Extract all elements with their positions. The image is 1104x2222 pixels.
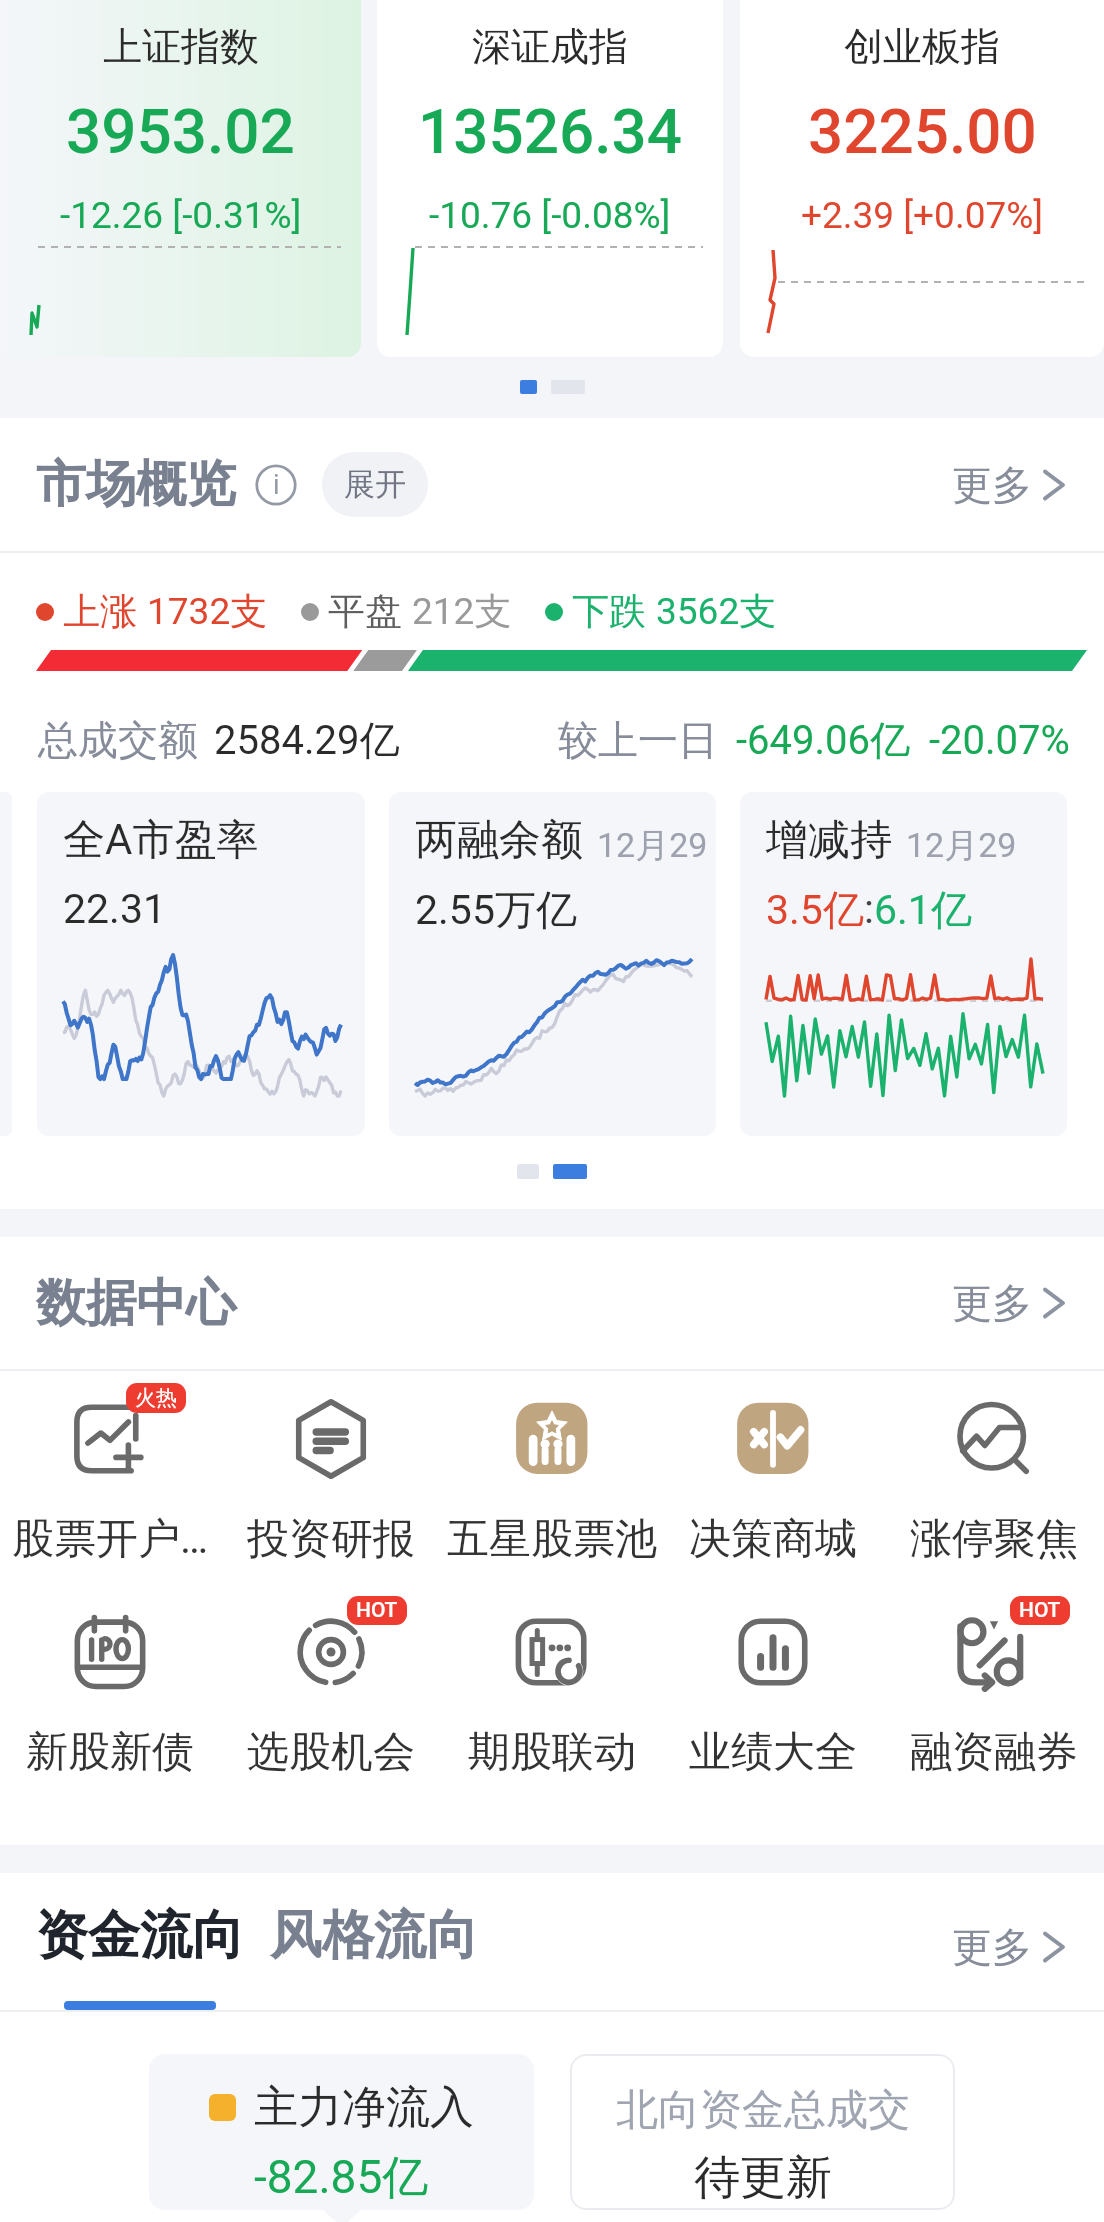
staticText: 展开 [344, 465, 406, 504]
staticText: 增减持 [766, 814, 892, 867]
staticText: 22.31 [63, 885, 166, 933]
staticText: 两融余额 [415, 814, 583, 867]
staticText: 更多 [952, 460, 1032, 510]
staticText: : [864, 885, 874, 933]
button[interactable]: 主力净流入 [149, 2054, 534, 2210]
staticText: 3.5亿 [766, 885, 864, 937]
button[interactable]: 更多 [948, 454, 1072, 516]
staticText: i [273, 469, 280, 501]
button[interactable]: 新股新债 [0, 1606, 220, 1779]
staticText: 期股联动 [468, 1726, 636, 1779]
staticText: 业绩大全 [689, 1726, 857, 1779]
button[interactable]: 全A市盈率 [37, 792, 365, 1136]
staticText: HOT [1019, 1598, 1061, 1623]
button[interactable]: 更多 [948, 1916, 1072, 1978]
staticText: 市场概览 [36, 453, 236, 516]
staticText: 数据中心 [36, 1272, 236, 1335]
button[interactable]: 增减持 [740, 792, 1067, 1136]
staticText: 创业板指 [844, 22, 1000, 71]
button[interactable]: 业绩大全 [662, 1606, 883, 1779]
button[interactable]: 北向资金总成交 [570, 2054, 955, 2210]
staticText: HOT [356, 1598, 398, 1623]
staticText: 融资融券 [910, 1726, 1078, 1779]
button[interactable]: 涨停聚焦 [883, 1393, 1104, 1566]
staticText: 3562支 [656, 588, 777, 635]
staticText: 更多 [952, 1278, 1032, 1328]
button[interactable]: 展开 [322, 452, 428, 517]
button[interactable]: 五星股票池 [441, 1393, 662, 1566]
staticText: 212支 [412, 588, 512, 635]
staticText: 较上一日 [558, 715, 718, 765]
staticText: 股票开户… [12, 1513, 209, 1566]
staticText: 下跌 [572, 588, 646, 635]
staticText: +2.39 [+0.07%] [801, 194, 1044, 237]
staticText: 北向资金总成交 [616, 2084, 910, 2137]
button[interactable]: 创业板指 [740, 0, 1104, 357]
staticText: -10.76 [-0.08%] [429, 194, 671, 237]
staticText: 五星股票池 [447, 1513, 657, 1566]
staticText: 13526.34 [418, 95, 682, 168]
staticText: 12月29 [906, 824, 1017, 867]
staticText: 新股新债 [26, 1726, 194, 1779]
staticText: 总成交额 [38, 715, 198, 765]
staticText: 3953.02 [66, 95, 295, 168]
staticText: 深证成指 [472, 22, 628, 71]
staticText: -649.06亿 [736, 715, 911, 765]
staticText: 涨停聚焦 [910, 1513, 1078, 1566]
staticText: 决策商城 [689, 1513, 857, 1566]
staticText: 3225.00 [808, 95, 1037, 168]
button[interactable]: 火热 [0, 1393, 220, 1566]
staticText: 上证指数 [103, 22, 259, 71]
button[interactable]: HOT [220, 1606, 441, 1779]
button[interactable]: HOT [883, 1606, 1104, 1779]
staticText: -12.26 [-0.31%] [60, 194, 302, 237]
staticText: 待更新 [694, 2149, 832, 2207]
staticText: 1732支 [147, 588, 268, 635]
staticText: -20.07% [929, 717, 1070, 764]
staticText: 2.55万亿 [415, 885, 577, 937]
button[interactable]: 两融余额 [389, 792, 716, 1136]
staticText: 投资研报 [247, 1513, 415, 1566]
staticText: 火热 [135, 1385, 177, 1411]
staticText: 上涨 [63, 588, 137, 635]
button[interactable]: 风格流向 [270, 1903, 478, 2010]
staticText: 主力净流入 [254, 2080, 474, 2135]
staticText: 更多 [952, 1922, 1032, 1972]
staticText: 12月29 [597, 824, 708, 867]
button[interactable]: 资金流向 [36, 1903, 244, 1969]
staticText: -82.85亿 [254, 2149, 429, 2207]
button[interactable]: 信息说明 [255, 464, 297, 506]
button[interactable]: 上证指数 [0, 0, 361, 357]
staticText: 平盘 [328, 588, 402, 635]
staticText: 6.1亿 [874, 885, 972, 937]
staticText: 2584.29亿 [214, 715, 400, 765]
button[interactable]: 更多 [948, 1272, 1072, 1334]
button[interactable]: 深证成指 [377, 0, 723, 357]
staticText: 选股机会 [247, 1726, 415, 1779]
button[interactable]: 投资研报 [220, 1393, 441, 1566]
button[interactable]: 期股联动 [441, 1606, 662, 1779]
button[interactable]: 决策商城 [662, 1393, 883, 1566]
staticText: 全A市盈率 [63, 814, 259, 867]
